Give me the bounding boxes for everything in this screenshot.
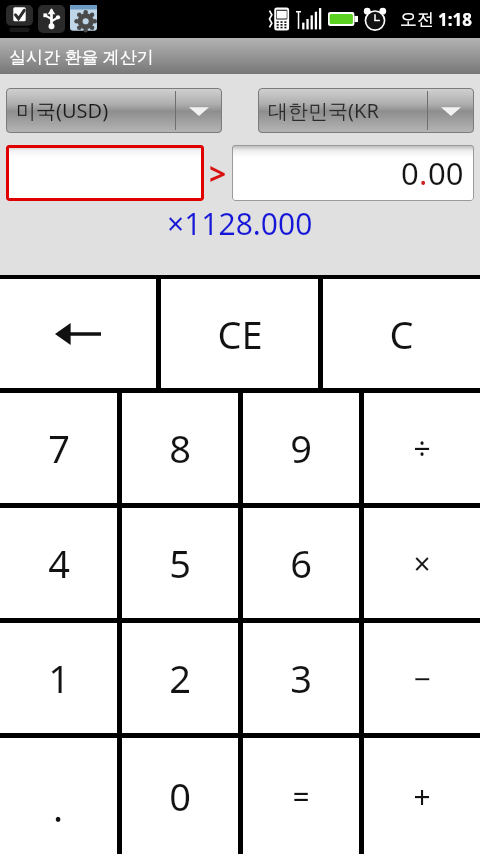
button[interactable]: 7 <box>0 393 117 503</box>
button[interactable]: 0 <box>232 145 474 201</box>
staticText: CE <box>217 308 263 360</box>
button[interactable]: 9 <box>243 393 359 503</box>
button[interactable]: 3 <box>243 623 359 733</box>
staticText: 미국(USD) <box>16 97 109 124</box>
staticText: . <box>419 152 428 194</box>
button[interactable]: 2 <box>122 623 238 733</box>
button[interactable]: 대한민국(KR <box>258 88 474 133</box>
staticText: 1:18 <box>438 8 472 31</box>
button[interactable]: . <box>0 738 117 854</box>
button[interactable]: 0 <box>122 738 238 854</box>
staticText: − <box>413 658 431 699</box>
staticText: 9 <box>290 422 312 474</box>
button[interactable]: 1 <box>0 623 117 733</box>
staticText: = <box>292 776 310 817</box>
button[interactable]: 6 <box>243 508 359 618</box>
button[interactable]: = <box>243 738 359 854</box>
staticText: 오전 <box>400 9 434 30</box>
staticText: 3 <box>290 652 312 704</box>
staticText: 8 <box>169 422 191 474</box>
staticText: 대한민국(KR <box>268 97 379 124</box>
button[interactable]: × <box>364 508 480 618</box>
staticText: 0 <box>401 152 419 194</box>
button[interactable]: C <box>323 279 480 388</box>
staticText: ÷ <box>413 428 431 469</box>
staticText: C <box>389 308 414 360</box>
staticText: 0 <box>169 770 191 822</box>
staticText: × <box>413 543 431 584</box>
button[interactable]: 8 <box>122 393 238 503</box>
button[interactable]: + <box>364 738 480 854</box>
staticText: 5 <box>169 537 191 589</box>
staticText: 6 <box>290 537 312 589</box>
staticText: + <box>413 776 431 817</box>
staticText: 2 <box>169 652 191 704</box>
button[interactable]: 미국(USD) <box>6 88 222 133</box>
button[interactable]: 4 <box>0 508 117 618</box>
staticText: 00 <box>428 152 464 194</box>
button[interactable] <box>6 145 204 201</box>
button[interactable]: Backspace <box>0 279 156 388</box>
staticText: . <box>53 781 64 833</box>
staticText: 4 <box>48 537 70 589</box>
staticText: ×1128.000 <box>167 203 313 244</box>
staticText: 실시간 환율 계산기 <box>9 45 154 68</box>
staticText: 7 <box>48 422 70 474</box>
staticText: 1 <box>48 652 70 704</box>
button[interactable]: − <box>364 623 480 733</box>
staticText: > <box>209 153 227 194</box>
button[interactable]: ÷ <box>364 393 480 503</box>
button[interactable]: 5 <box>122 508 238 618</box>
button[interactable]: CE <box>161 279 318 388</box>
